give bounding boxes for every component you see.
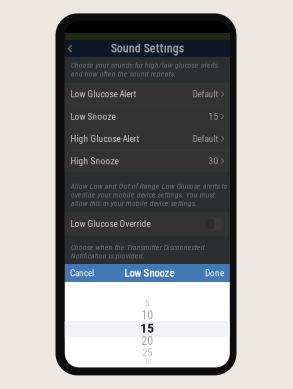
- staticText: Choose when the Transmitter Disconnected: [71, 243, 205, 252]
- staticText: 15: [209, 111, 219, 122]
- staticText: Low Glucose Alert: [70, 89, 136, 100]
- button[interactable]: Low Glucose Override: [65, 212, 230, 235]
- button[interactable]: High Glucose Alert: [65, 128, 230, 150]
- button[interactable]: Low Glucose Alert: [65, 83, 230, 105]
- button[interactable]: High Snooze: [65, 150, 230, 172]
- staticText: High Glucose Alert: [70, 133, 139, 144]
- staticText: 30: [209, 156, 219, 166]
- staticText: 30: [143, 357, 151, 367]
- staticText: Low Glucose Override: [70, 218, 150, 229]
- staticText: allow this in your mobile device setting…: [71, 199, 197, 208]
- staticText: Sound Settings: [111, 41, 184, 56]
- button[interactable]: Done: [200, 264, 230, 282]
- staticText: override your mobile device settings. Yo…: [71, 190, 215, 199]
- staticText: 5: [145, 298, 150, 309]
- button[interactable]: Low Snooze: [65, 105, 230, 128]
- staticText: and how often the sound repeats.: [71, 69, 176, 78]
- staticText: Low Snooze: [70, 111, 115, 122]
- staticText: Done: [205, 267, 224, 278]
- staticText: Default: [193, 89, 219, 100]
- staticText: 20: [141, 334, 153, 348]
- staticText: Choose your sounds for high/low glucose …: [71, 61, 218, 70]
- staticText: Notification is provided.: [71, 251, 145, 260]
- staticText: High Snooze: [70, 156, 118, 166]
- staticText: Low Snooze: [124, 267, 174, 279]
- staticText: Cancel: [70, 267, 94, 278]
- staticText: 15: [140, 320, 154, 336]
- staticText: Default: [193, 133, 219, 144]
- staticText: Allow Low and Out of Range Low Glucose a…: [71, 182, 228, 191]
- button[interactable]: Back: [65, 40, 76, 57]
- staticText: 25: [142, 346, 152, 359]
- staticText: 10: [141, 308, 153, 322]
- button[interactable]: Cancel: [65, 264, 99, 282]
